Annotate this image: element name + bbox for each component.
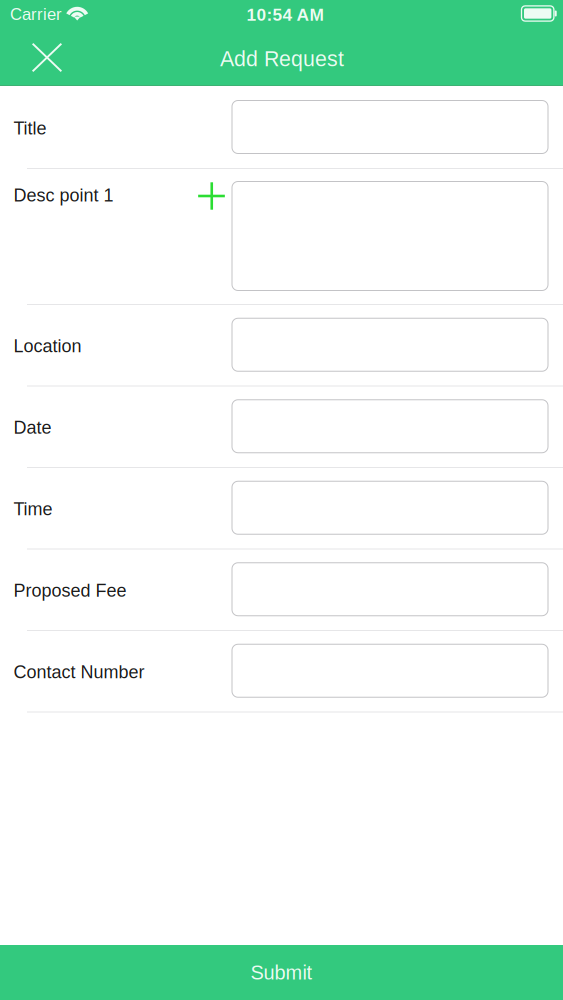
button[interactable]: Proposed Fee field — [232, 563, 548, 616]
button[interactable]: Date field — [232, 400, 548, 453]
button[interactable]: Add description point — [189, 174, 233, 218]
button[interactable]: Time field — [232, 481, 548, 534]
staticText: Proposed Fee — [13, 580, 126, 601]
staticText: Desc point 1 — [13, 185, 113, 205]
button[interactable]: Close — [21, 35, 73, 79]
staticText: Location — [13, 336, 81, 356]
staticText: Time — [13, 499, 52, 519]
staticText: Title — [13, 118, 46, 138]
button[interactable]: Contact Number field — [232, 644, 548, 697]
staticText: Add Request — [220, 47, 344, 71]
staticText: Date — [13, 418, 51, 438]
button[interactable]: Title field — [232, 100, 548, 153]
button[interactable]: Submit — [0, 945, 563, 1000]
staticText: Contact Number — [13, 662, 144, 682]
staticText: Submit — [250, 961, 312, 984]
staticText: Carrier — [10, 5, 62, 24]
button[interactable]: Location field — [232, 318, 548, 371]
staticText: 10:54 AM — [246, 5, 323, 24]
